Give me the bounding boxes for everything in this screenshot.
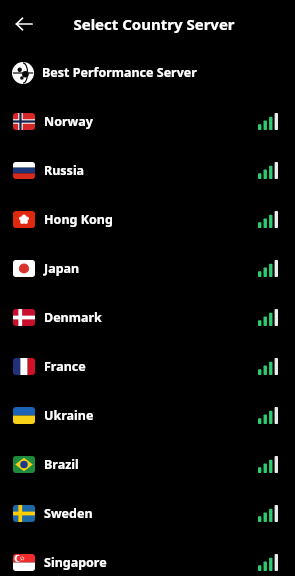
button[interactable]: Norway <box>0 97 295 146</box>
staticText: Russia <box>44 162 85 179</box>
staticText: Sweden <box>44 505 93 522</box>
staticText: Denmark <box>44 309 102 326</box>
button[interactable]: Singapore <box>0 538 295 576</box>
button[interactable]: Back <box>6 6 42 42</box>
button[interactable]: Denmark <box>0 293 295 342</box>
button[interactable]: Hong Kong <box>0 195 295 244</box>
staticText: France <box>44 358 86 375</box>
staticText: Singapore <box>44 554 107 571</box>
staticText: Best Performance Server <box>42 64 197 81</box>
button[interactable]: Ukraine <box>0 391 295 440</box>
button[interactable]: France <box>0 342 295 391</box>
button[interactable]: Russia <box>0 146 295 195</box>
button[interactable]: Sweden <box>0 489 295 538</box>
button[interactable]: Best Performance Server <box>0 48 295 97</box>
button[interactable]: Japan <box>0 244 295 293</box>
button[interactable]: Brazil <box>0 440 295 489</box>
staticText: Norway <box>44 113 93 130</box>
staticText: Japan <box>44 260 80 277</box>
staticText: Select Country Server <box>73 14 235 34</box>
staticText: Ukraine <box>44 407 94 424</box>
staticText: Brazil <box>44 456 79 473</box>
staticText: Hong Kong <box>44 211 113 228</box>
